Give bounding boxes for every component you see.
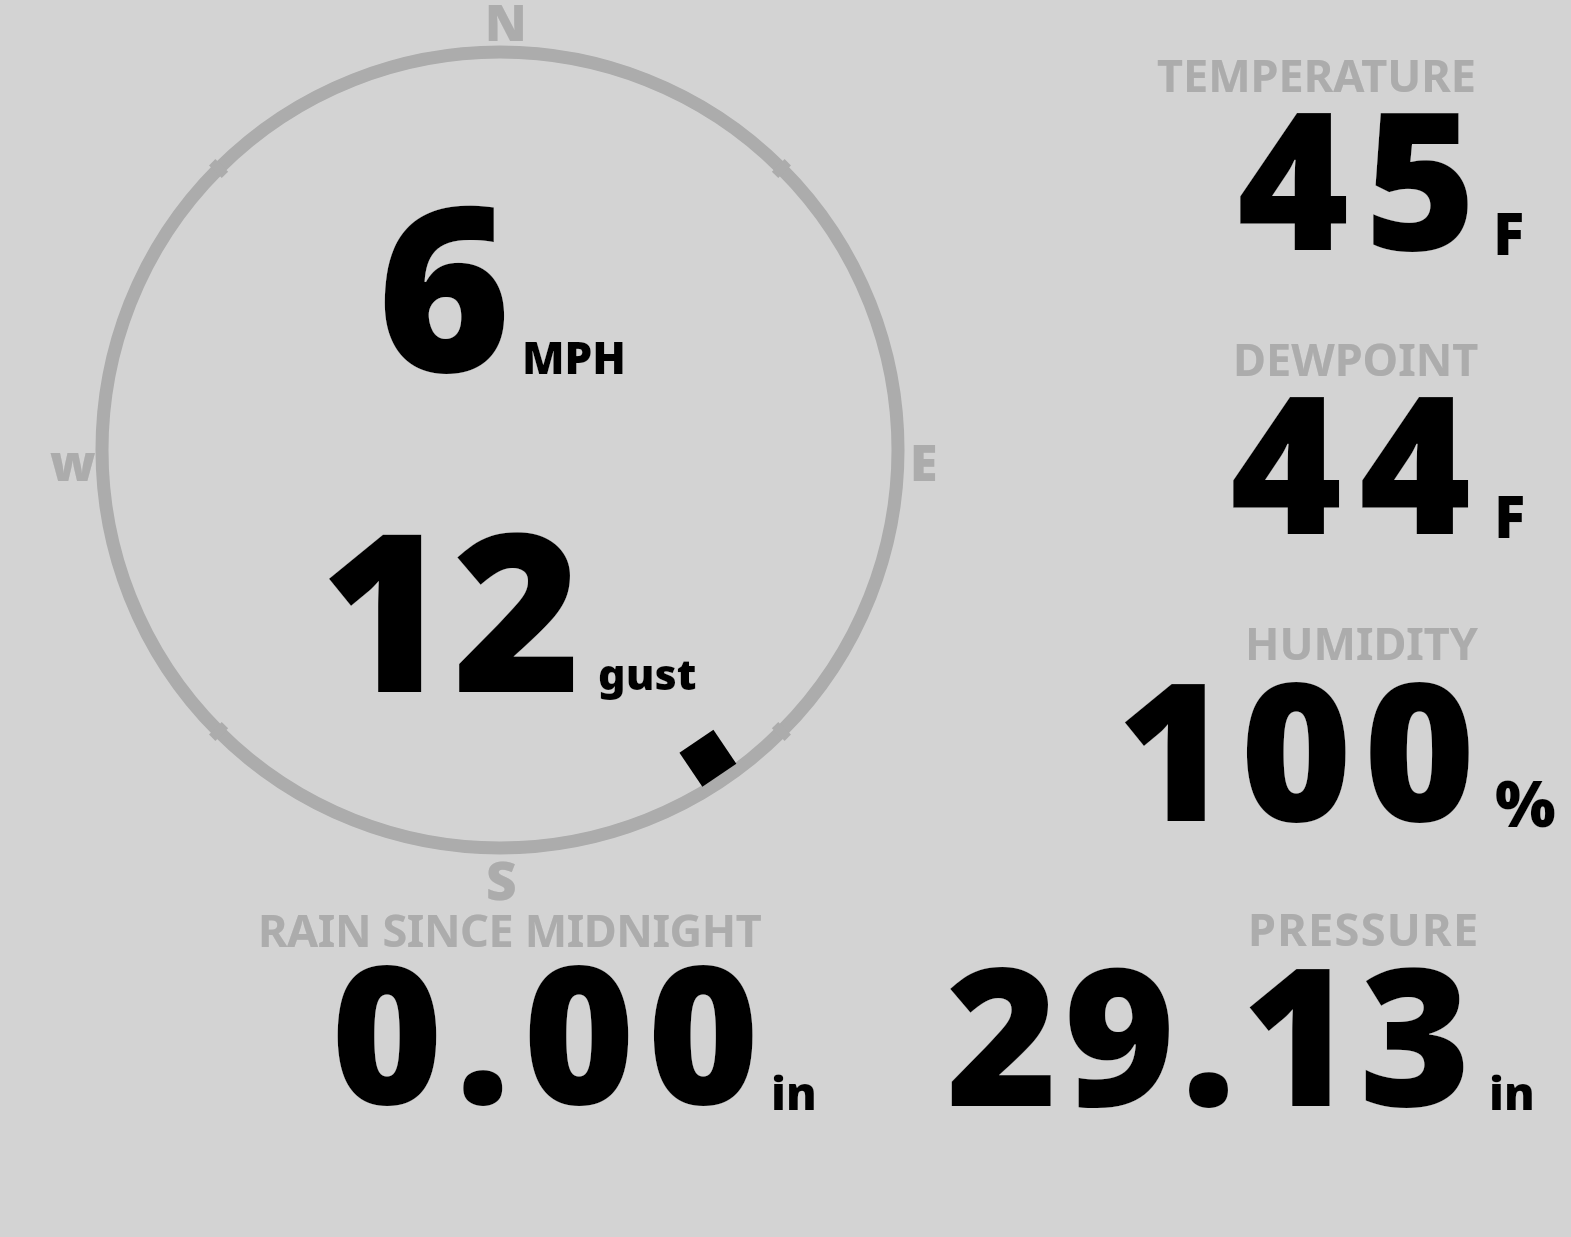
staticText: F: [1494, 476, 1526, 555]
staticText: 45: [1237, 46, 1492, 306]
button[interactable]: Pressure 29.13 in: [900, 880, 1560, 1130]
button[interactable]: Humidity 100 percent: [960, 585, 1560, 855]
staticText: 29.13: [946, 902, 1477, 1162]
staticText: w: [50, 428, 96, 496]
button[interactable]: Temperature 45 F: [960, 20, 1560, 280]
staticText: in: [1489, 1061, 1535, 1124]
staticText: F: [1493, 193, 1525, 272]
staticText: 0.00: [331, 900, 772, 1160]
staticText: TEMPERATURE: [1157, 44, 1476, 105]
staticText: in: [771, 1061, 817, 1124]
staticText: S: [486, 843, 517, 915]
staticText: 12: [320, 457, 585, 757]
staticText: HUMIDITY: [1245, 612, 1478, 673]
staticText: MPH: [522, 327, 627, 387]
staticText: %: [1495, 759, 1556, 846]
staticText: 44: [1230, 330, 1489, 590]
button[interactable]: Dewpoint 44 F: [960, 300, 1560, 565]
staticText: DEWPOINT: [1233, 328, 1479, 389]
button[interactable]: Rain since midnight 0.00 in: [180, 880, 840, 1130]
staticText: E: [910, 428, 938, 496]
staticText: N: [485, 0, 527, 56]
staticText: PRESSURE: [1248, 898, 1480, 959]
staticText: 100: [1117, 617, 1487, 877]
staticText: 6: [377, 127, 512, 439]
staticText: gust: [598, 644, 697, 703]
button[interactable]: Wind speed 6 MPH, gusting 12, direction …: [60, 10, 940, 890]
staticText: RAIN SINCE MIDNIGHT: [258, 899, 762, 960]
